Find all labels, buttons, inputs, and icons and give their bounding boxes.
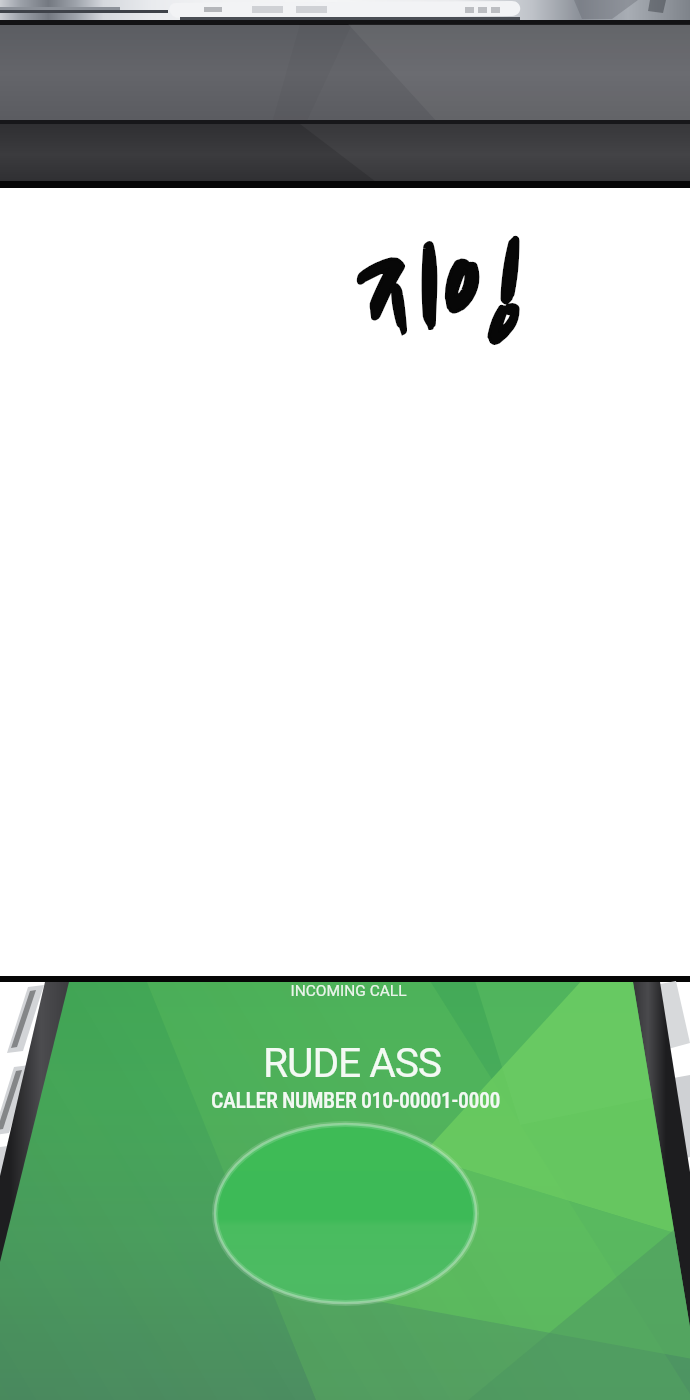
staticText: INCOMING CALL bbox=[290, 982, 407, 1000]
staticText: 지잉 bbox=[356, 223, 525, 379]
staticText: RUDE ASS bbox=[263, 1039, 441, 1087]
button[interactable]: Answer call bbox=[215, 1124, 476, 1303]
staticText: CALLER NUMBER 010-00001-0000 bbox=[211, 1088, 500, 1114]
staticText: 지잉 bbox=[356, 223, 525, 379]
